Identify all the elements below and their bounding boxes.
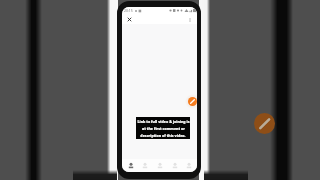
button[interactable]: More options: [185, 15, 194, 24]
button[interactable]: You: [182, 159, 195, 172]
button[interactable]: Shorts: [138, 159, 151, 172]
button[interactable]: Close: [125, 15, 134, 24]
button[interactable]: Subscriptions: [168, 159, 181, 172]
staticText: Link to full video & joining is: [137, 119, 190, 124]
staticText: at the first comment or: [142, 126, 185, 131]
staticText: description of this video.: [140, 133, 186, 138]
button[interactable]: Add: [153, 159, 166, 172]
staticText: 20:15: [124, 8, 133, 13]
button[interactable]: Compose: [188, 97, 197, 106]
button[interactable]: Home: [124, 159, 137, 172]
